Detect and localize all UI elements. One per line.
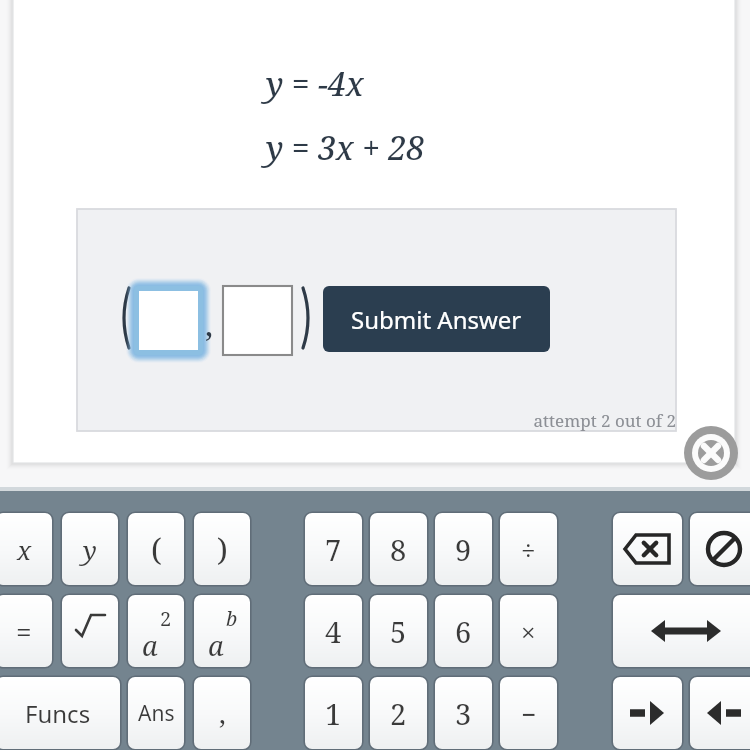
button[interactable]: 3 xyxy=(435,677,492,749)
staticText: y xyxy=(83,532,97,567)
button[interactable]: Ans xyxy=(128,677,184,749)
button[interactable]: 8 xyxy=(370,513,427,585)
staticText: Ans xyxy=(138,699,175,728)
staticText: a xyxy=(142,627,158,664)
staticText: 4 xyxy=(325,612,342,651)
button[interactable]: a xyxy=(128,595,184,667)
button[interactable]: 7 xyxy=(305,513,362,585)
button[interactable]: ) xyxy=(194,513,250,585)
button[interactable]: First coordinate xyxy=(134,286,203,355)
staticText: Funcs xyxy=(25,697,91,730)
staticText: a xyxy=(208,627,224,664)
staticText: , xyxy=(219,695,226,732)
button[interactable]: ÷ xyxy=(500,513,557,585)
button[interactable]: Square root xyxy=(62,595,118,667)
staticText: ) xyxy=(217,528,228,570)
staticText: , xyxy=(205,303,214,345)
staticText: 1 xyxy=(325,694,342,733)
staticText: 3 xyxy=(455,694,472,733)
button[interactable]: 6 xyxy=(435,595,492,667)
staticText: attempt 2 out of 2 xyxy=(533,409,676,432)
button[interactable]: − xyxy=(500,677,557,749)
button[interactable]: = xyxy=(0,595,52,667)
staticText: 2 xyxy=(390,694,407,733)
button[interactable]: 5 xyxy=(370,595,427,667)
button[interactable]: , xyxy=(194,677,250,749)
button[interactable]: Backspace xyxy=(613,513,682,585)
staticText: 5 xyxy=(390,612,407,651)
button[interactable]: x xyxy=(0,513,52,585)
button[interactable]: Move right xyxy=(690,677,750,749)
staticText: 2 xyxy=(160,605,172,632)
staticText: 6 xyxy=(455,612,472,651)
button[interactable]: 1 xyxy=(305,677,362,749)
button[interactable]: ( xyxy=(128,513,184,585)
button[interactable]: Close xyxy=(684,426,738,480)
button[interactable]: Funcs xyxy=(0,677,120,749)
button[interactable]: Clear xyxy=(690,513,750,585)
button[interactable]: y xyxy=(62,513,118,585)
staticText: y = 3x + 28 xyxy=(266,126,425,170)
button[interactable]: Move left xyxy=(613,677,682,749)
staticText: − xyxy=(521,696,537,731)
button[interactable]: a xyxy=(194,595,250,667)
button[interactable]: 4 xyxy=(305,595,362,667)
staticText: b xyxy=(226,605,238,632)
button[interactable]: Second coordinate xyxy=(223,286,292,355)
button[interactable]: 2 xyxy=(370,677,427,749)
staticText: ( xyxy=(151,528,162,570)
staticText: 7 xyxy=(325,530,342,569)
staticText: = xyxy=(16,612,32,650)
staticText: y = −4x xyxy=(266,62,364,106)
staticText: 9 xyxy=(455,530,472,569)
button[interactable]: × xyxy=(500,595,557,667)
button[interactable]: 9 xyxy=(435,513,492,585)
button[interactable]: Expand xyxy=(613,595,750,667)
staticText: × xyxy=(521,614,536,649)
staticText: ÷ xyxy=(521,532,536,567)
staticText: 8 xyxy=(390,530,407,569)
button[interactable]: Submit Answer xyxy=(323,286,550,352)
staticText: Submit Answer xyxy=(351,303,522,336)
staticText: x xyxy=(17,532,32,567)
